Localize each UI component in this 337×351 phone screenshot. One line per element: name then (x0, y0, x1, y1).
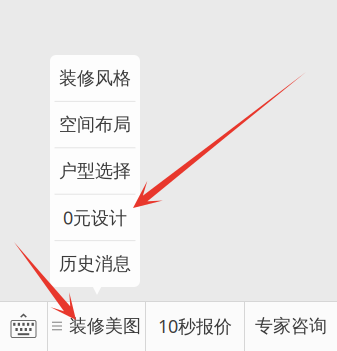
button[interactable]: 专家咨询 (245, 301, 337, 351)
staticText: 0元设计 (63, 205, 127, 230)
staticText: 历史消息 (59, 252, 131, 275)
button[interactable]: 户型选择 (50, 148, 140, 194)
button[interactable]: 10秒报价 (146, 301, 244, 351)
button[interactable]: 0元设计 (50, 195, 140, 240)
button[interactable]: 装修美图 (48, 301, 145, 351)
staticText: 10秒报价 (158, 314, 232, 338)
button[interactable]: 空间布局 (50, 102, 140, 147)
staticText: 专家咨询 (255, 315, 327, 337)
staticText: 空间布局 (59, 113, 131, 136)
staticText: 户型选择 (59, 160, 131, 182)
button[interactable]: 历史消息 (50, 241, 140, 286)
staticText: 装修风格 (59, 67, 131, 90)
button[interactable]: 装修风格 (50, 55, 140, 101)
button[interactable]: 键盘 (0, 301, 47, 351)
staticText: 装修美图 (69, 315, 141, 337)
